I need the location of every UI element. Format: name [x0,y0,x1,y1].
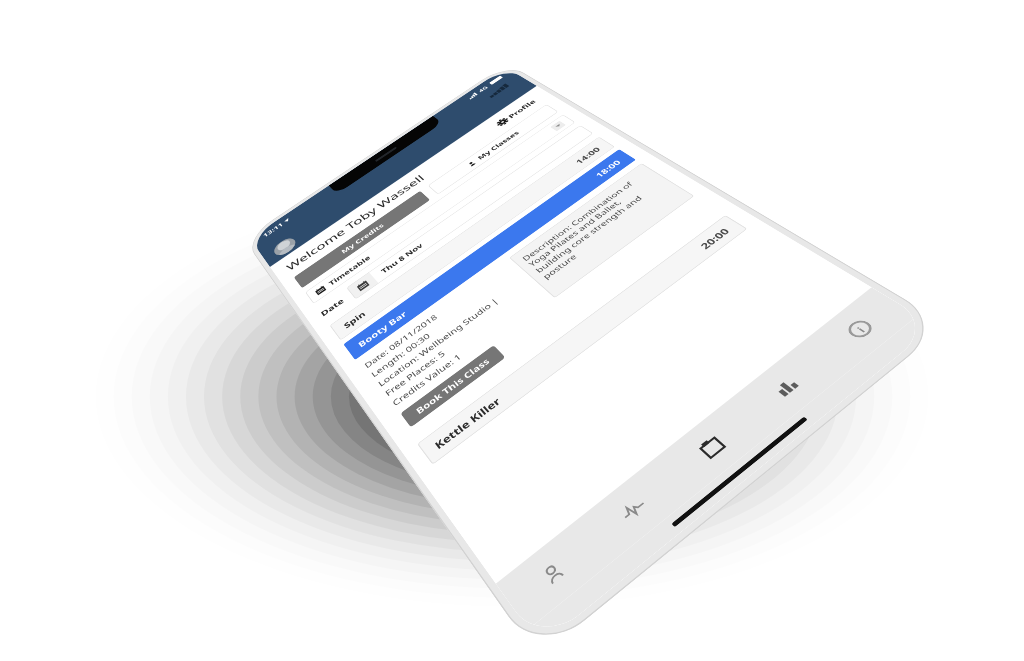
staticText: Timetable [327,253,373,287]
staticText: Kettle Killer [432,395,503,452]
button[interactable]: My Classes [427,104,559,195]
staticText: Profile [506,98,538,120]
staticText: Credits Value: 1 [390,351,464,408]
button[interactable]: Account avatar [271,235,298,258]
staticText: My Credits [339,221,386,255]
staticText: Date: 08/11/2018 [362,312,439,370]
button[interactable]: Kettle Killer [417,215,748,465]
button[interactable]: Booty Bar [343,149,636,360]
button[interactable]: Book This Class [400,345,506,428]
button[interactable]: Spin [329,137,615,341]
staticText: Free Places: 5 [383,348,448,398]
button[interactable]: Thu 8 Nov [346,125,594,300]
staticText: Location: Wellbeing Studio | Donna [376,279,525,389]
staticText: Date [319,296,346,318]
staticText: Spin [342,309,368,330]
staticText: 4G [477,85,489,93]
staticText: Thu 8 Nov [379,241,425,275]
staticText: My Classes [475,129,521,161]
button[interactable]: My Credits [294,191,430,288]
staticText: 14:00 [573,145,603,166]
button[interactable]: Stats [729,342,846,434]
staticText: 18:00 [593,158,624,179]
button[interactable]: Activity [576,459,692,562]
staticText: Book This Class [413,355,492,416]
button[interactable]: Classes [653,400,770,497]
staticText: Welcome Toby Wassell [284,172,428,273]
button[interactable]: Profile [496,520,612,629]
button[interactable]: Timetable [305,114,576,304]
staticText: Booty Bar [356,309,409,349]
staticText: i [853,324,868,334]
staticText: Length: 00:30 [369,331,432,379]
button[interactable]: Profile [491,95,542,130]
button[interactable]: Info [801,287,918,374]
staticText: 13:11 [261,221,284,239]
staticText: Description: Combination of Yoga Pilates… [520,170,672,281]
staticText: 20:00 [697,225,733,251]
